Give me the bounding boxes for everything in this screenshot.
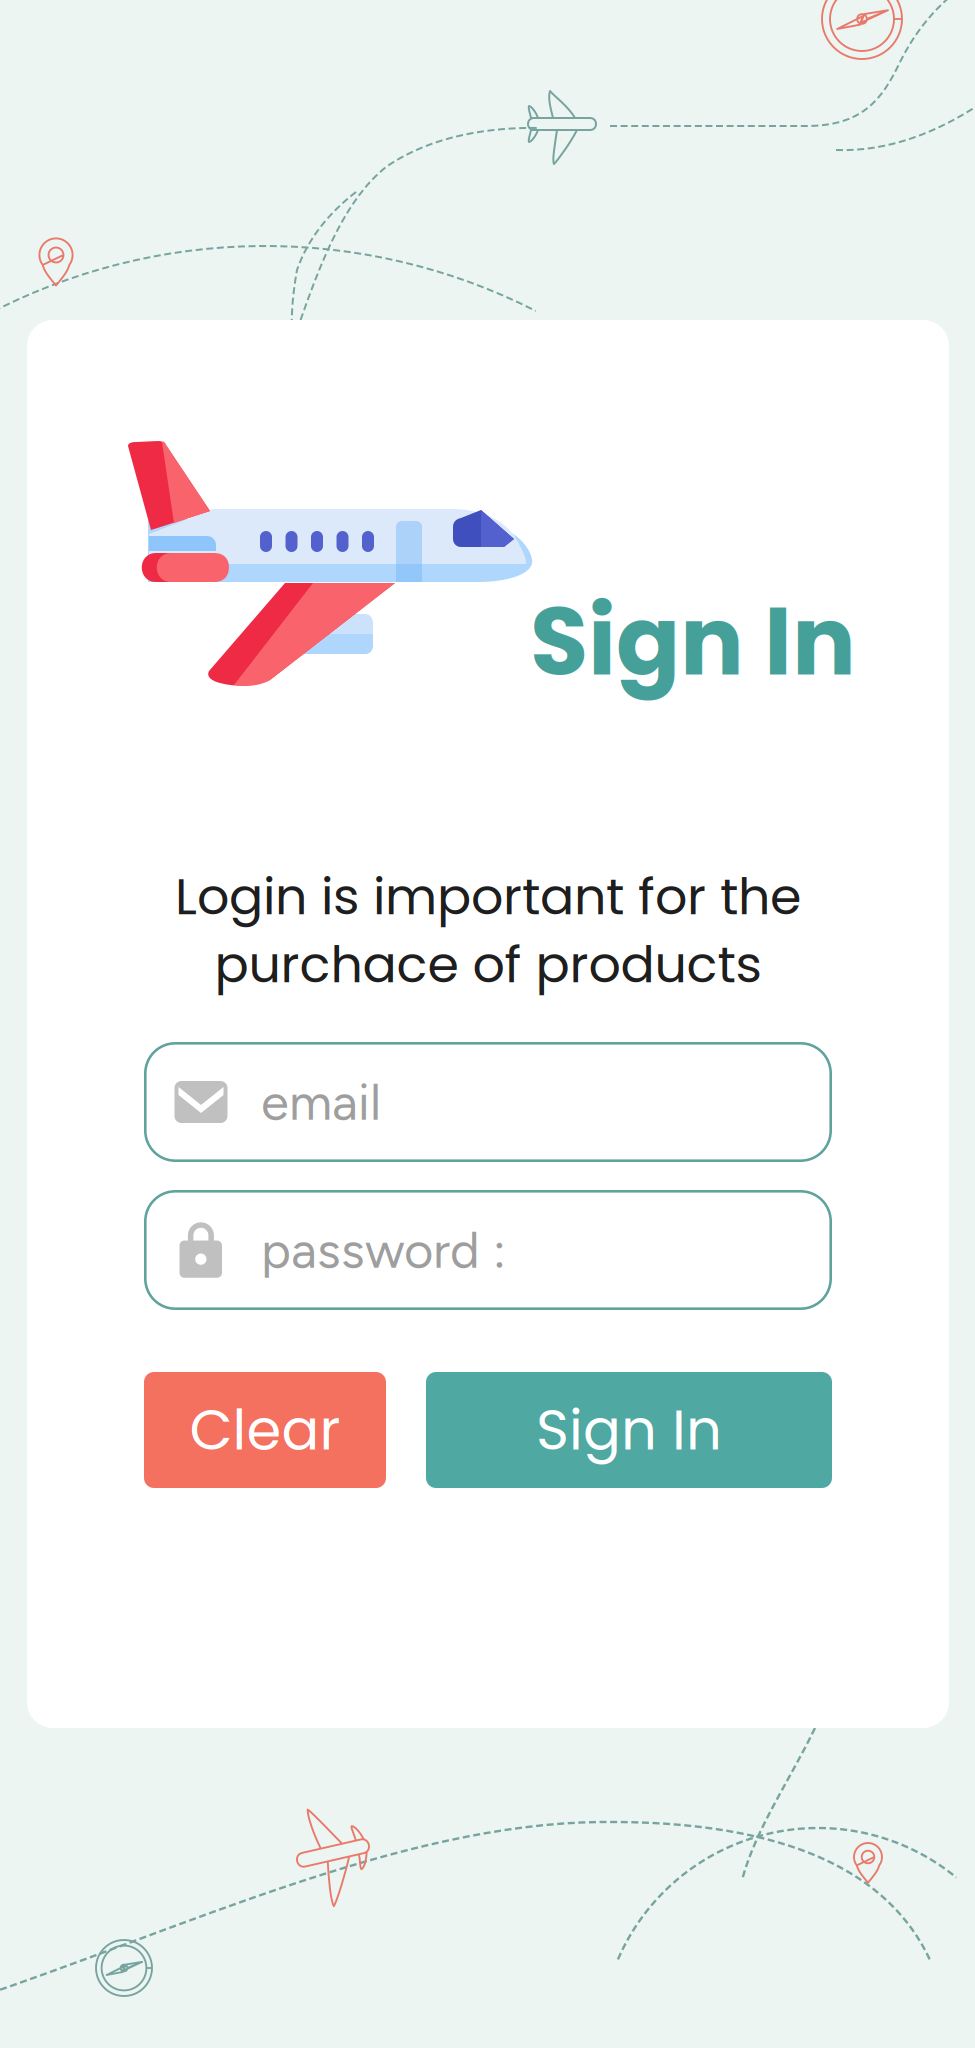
staticText: Sign In [530, 575, 856, 707]
button[interactable]: email [144, 1042, 832, 1162]
button[interactable]: Sign In [426, 1372, 832, 1488]
staticText: Clear [189, 1391, 340, 1469]
staticText: password : [261, 1220, 506, 1280]
staticText: email [261, 1072, 381, 1132]
button[interactable]: Clear [144, 1372, 386, 1488]
staticText: purchace of products [214, 929, 761, 1000]
staticText: Sign In [536, 1391, 722, 1469]
button[interactable]: password : [144, 1190, 832, 1310]
staticText: Login is important for the [175, 861, 801, 932]
